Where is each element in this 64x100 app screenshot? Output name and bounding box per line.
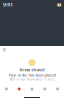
staticText: 9:41 (3, 1, 13, 8)
button[interactable]: Tab (0, 84, 13, 94)
staticText: ▮▮ (57, 2, 61, 7)
staticText: We'll let you know when it ships (9, 78, 54, 81)
staticText: × (2, 45, 7, 55)
button[interactable]: Tab (38, 84, 51, 94)
button[interactable]: Tab (26, 84, 38, 94)
button[interactable]: Tab (13, 84, 26, 94)
button[interactable]: Tab (51, 84, 64, 94)
staticText: Your order has been placed (8, 72, 55, 78)
staticText: Great choice! (19, 67, 44, 72)
